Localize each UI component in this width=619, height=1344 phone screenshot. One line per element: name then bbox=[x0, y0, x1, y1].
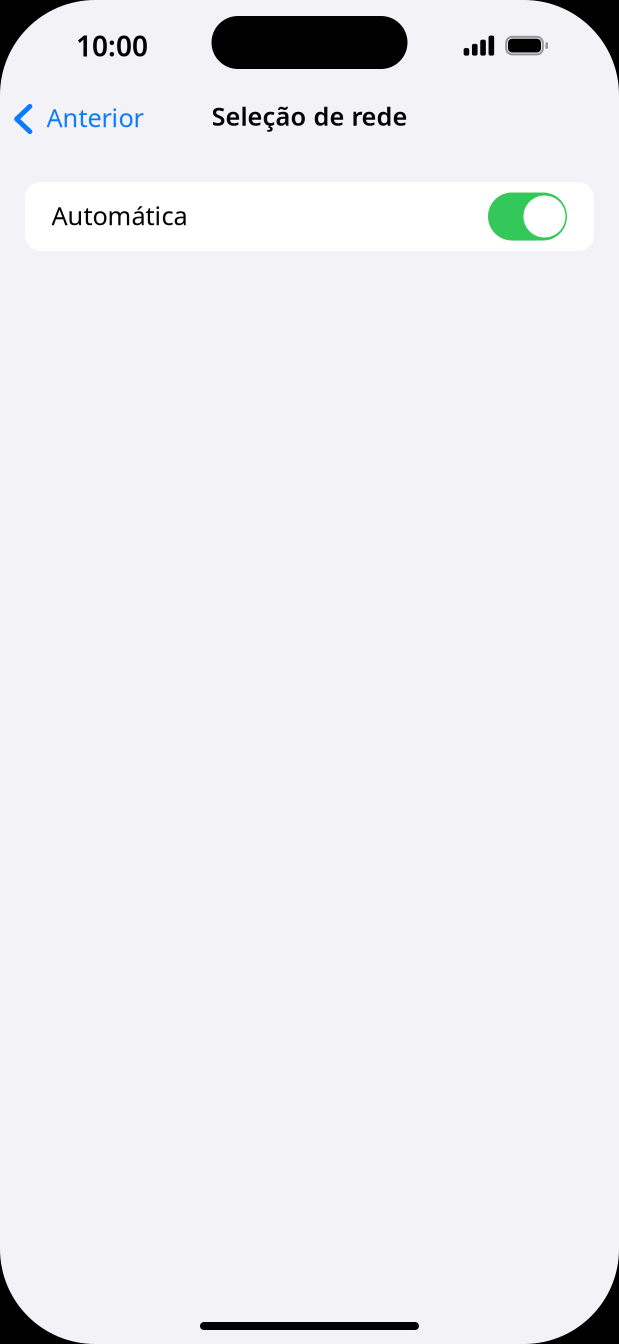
staticText: Seleção de rede bbox=[211, 99, 407, 133]
button[interactable]: Anterior bbox=[0, 89, 155, 143]
staticText: Anterior bbox=[46, 101, 143, 134]
button[interactable]: Automática bbox=[25, 182, 594, 251]
staticText: Automática bbox=[52, 198, 188, 232]
staticText: 10:00 bbox=[76, 27, 148, 64]
